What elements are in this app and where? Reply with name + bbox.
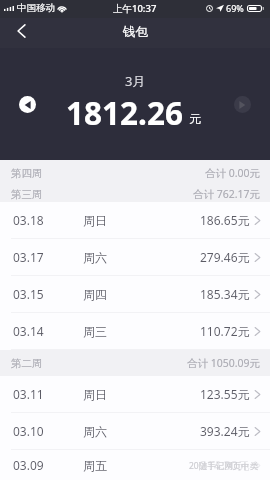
button[interactable]: 03.17	[0, 239, 270, 276]
button[interactable]: 第四周	[0, 160, 270, 186]
staticText: 周日	[83, 387, 107, 402]
staticText: 69%	[226, 2, 244, 14]
button[interactable]: 03.09	[0, 450, 270, 480]
button[interactable]: 03.11	[0, 376, 270, 413]
staticText: 03.11	[13, 386, 44, 402]
staticText: 第三周	[11, 188, 43, 201]
staticText: 周四	[83, 287, 107, 302]
button[interactable]: 第三周	[0, 186, 270, 202]
staticText: 合计 1050.09元	[187, 356, 261, 370]
staticText: 3月	[125, 72, 146, 90]
staticText: 279.46元	[200, 249, 250, 265]
button[interactable]: 第二周	[0, 350, 270, 376]
staticText: 周六	[83, 424, 107, 439]
staticText: 186.65元	[200, 212, 250, 228]
staticText: 03.10	[13, 423, 44, 439]
button[interactable]: 03.14	[0, 313, 270, 350]
staticText: 393.24元	[200, 423, 250, 439]
staticText: 20随手记网页中类	[189, 460, 259, 472]
button[interactable]: 03.10	[0, 413, 270, 450]
staticText: 周日	[83, 213, 107, 228]
staticText: 上午10:37	[113, 2, 157, 15]
staticText: 周六	[83, 250, 107, 265]
staticText: 第二周	[11, 357, 43, 370]
button[interactable]: 03.18	[0, 202, 270, 239]
staticText: 合计 762.17元	[193, 187, 261, 201]
button[interactable]: 03.15	[0, 276, 270, 313]
staticText: 03.15	[13, 286, 44, 302]
staticText: 1812.26	[66, 91, 183, 134]
staticText: 合计 0.00元	[205, 166, 261, 180]
staticText: 03.14	[13, 323, 44, 339]
staticText: 03.18	[13, 212, 44, 228]
staticText: 03.09	[13, 457, 44, 473]
staticText: 元	[189, 111, 201, 126]
staticText: 214.30元	[200, 457, 250, 473]
staticText: 03.17	[13, 249, 44, 265]
button[interactable]: Next month	[234, 96, 251, 113]
staticText: 钱包	[123, 24, 148, 40]
staticText: 周五	[83, 458, 107, 473]
staticText: 123.55元	[200, 386, 250, 402]
staticText: 110.72元	[200, 323, 250, 339]
staticText: 中国移动	[17, 2, 55, 14]
button[interactable]: Back	[0, 18, 40, 48]
staticText: 第四周	[11, 167, 43, 180]
staticText: 185.34元	[200, 286, 250, 302]
button[interactable]: Previous month	[19, 96, 36, 113]
staticText: 周三	[83, 324, 107, 339]
